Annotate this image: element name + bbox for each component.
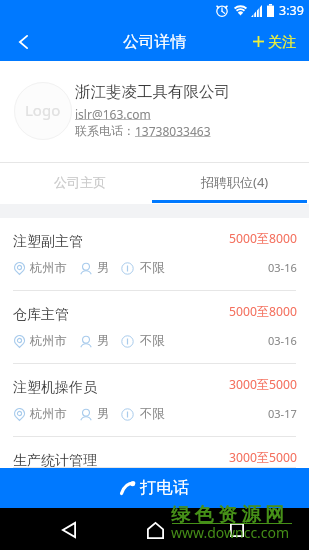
staticText: 招聘职位(4) [201,173,269,191]
staticText: 5000至8000 [229,303,297,320]
staticText: 男 [97,333,110,348]
staticText: 生产统计管理 [13,452,97,468]
button[interactable]: 公司主页 [0,162,154,204]
staticText: 3000至5000 [229,449,297,466]
staticText: 联系电话： [75,123,135,138]
staticText: 浙江斐凌工具有限公司 [75,82,230,102]
button[interactable]: 关注 [253,22,297,61]
staticText: 绿色资源网 [171,503,289,527]
button[interactable]: islr@163.com [75,106,151,122]
staticText: 不限 [140,406,165,421]
button[interactable]: 注塑机操作员 [0,364,309,437]
button[interactable]: 生产统计管理 [0,437,309,468]
button[interactable]: 打电话 [0,468,309,508]
staticText: 男 [97,260,110,275]
staticText: 杭州市 [30,260,67,275]
button[interactable]: 13738033463 [135,123,211,139]
button[interactable]: 注塑副主管 [0,218,309,291]
staticText: 公司主页 [54,174,106,190]
staticText: 3:39 [279,2,304,19]
button[interactable]: Back [0,22,46,61]
staticText: 3000至5000 [229,376,297,393]
staticText: 03-16 [268,333,297,348]
staticText: 注塑机操作员 [13,379,97,397]
staticText: 03-16 [268,260,297,275]
staticText: 公司详情 [123,32,187,52]
staticText: 打电话 [140,477,190,498]
staticText: 03-17 [268,406,297,421]
staticText: 不限 [140,333,165,348]
staticText: 杭州市 [30,406,67,421]
staticText: 仓库主管 [13,306,69,324]
button[interactable]: Back [55,516,83,544]
staticText: 5000至8000 [229,230,297,247]
button[interactable]: Recent apps [223,516,251,544]
staticText: 注塑副主管 [13,233,83,251]
staticText: 男 [97,406,110,421]
staticText: www.downcc.com [171,523,290,542]
staticText: 关注 [268,33,297,51]
staticText: Logo [25,100,61,120]
staticText: 杭州市 [30,333,67,348]
button[interactable]: Home [141,516,169,544]
staticText: 不限 [140,260,165,275]
button[interactable]: 招聘职位(4) [154,162,309,204]
button[interactable]: 仓库主管 [0,291,309,364]
